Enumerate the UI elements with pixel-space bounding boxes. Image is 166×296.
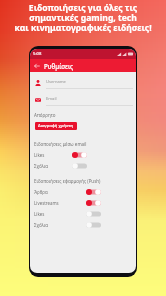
staticText: Σχόλια (34, 222, 48, 228)
button[interactable]: Σχόλια (34, 160, 87, 171)
button[interactable]: Άρθρα (34, 186, 101, 197)
staticText: Ειδοποιήσεις μέσω email (34, 141, 87, 147)
staticText: Απόρρητο (34, 112, 56, 118)
button[interactable]: Username (30, 79, 136, 89)
button[interactable]: Livestreams (34, 197, 101, 208)
staticText: 5:08 (33, 51, 42, 57)
staticText: Σχόλια (34, 163, 48, 169)
staticText: Άρθρα (34, 189, 48, 195)
button[interactable]: Email (30, 96, 136, 106)
staticText: Διαγραφή χρήστη (38, 123, 74, 129)
staticText: Livestreams (34, 200, 59, 206)
button[interactable]: Likes (34, 208, 101, 219)
staticText: Ειδοποιήσεις εφαρμογής (Push) (34, 178, 101, 184)
staticText: Ρυθμίσεις (44, 62, 74, 70)
button[interactable]: Back (30, 59, 44, 72)
button[interactable]: Likes (34, 149, 87, 160)
staticText: Ειδοποιήσεις για όλες τις σημαντικές gam… (0, 2, 166, 34)
staticText: Email (46, 96, 57, 102)
staticText: Likes (34, 152, 45, 158)
staticText: Likes (34, 211, 45, 217)
staticText: Username (46, 79, 66, 85)
button[interactable]: Σχόλια (34, 219, 101, 230)
button[interactable]: Διαγραφή χρήστη (35, 122, 77, 130)
